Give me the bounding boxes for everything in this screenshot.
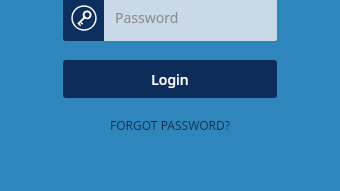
staticText: FORGOT PASSWORD? bbox=[110, 117, 230, 133]
button[interactable]: FORGOT PASSWORD? bbox=[0, 114, 340, 136]
other: Password bbox=[63, 0, 104, 41]
staticText: Login bbox=[151, 70, 189, 89]
staticText: Password bbox=[115, 8, 179, 27]
button[interactable]: Login bbox=[63, 60, 277, 98]
button[interactable]: Password bbox=[63, 0, 277, 41]
